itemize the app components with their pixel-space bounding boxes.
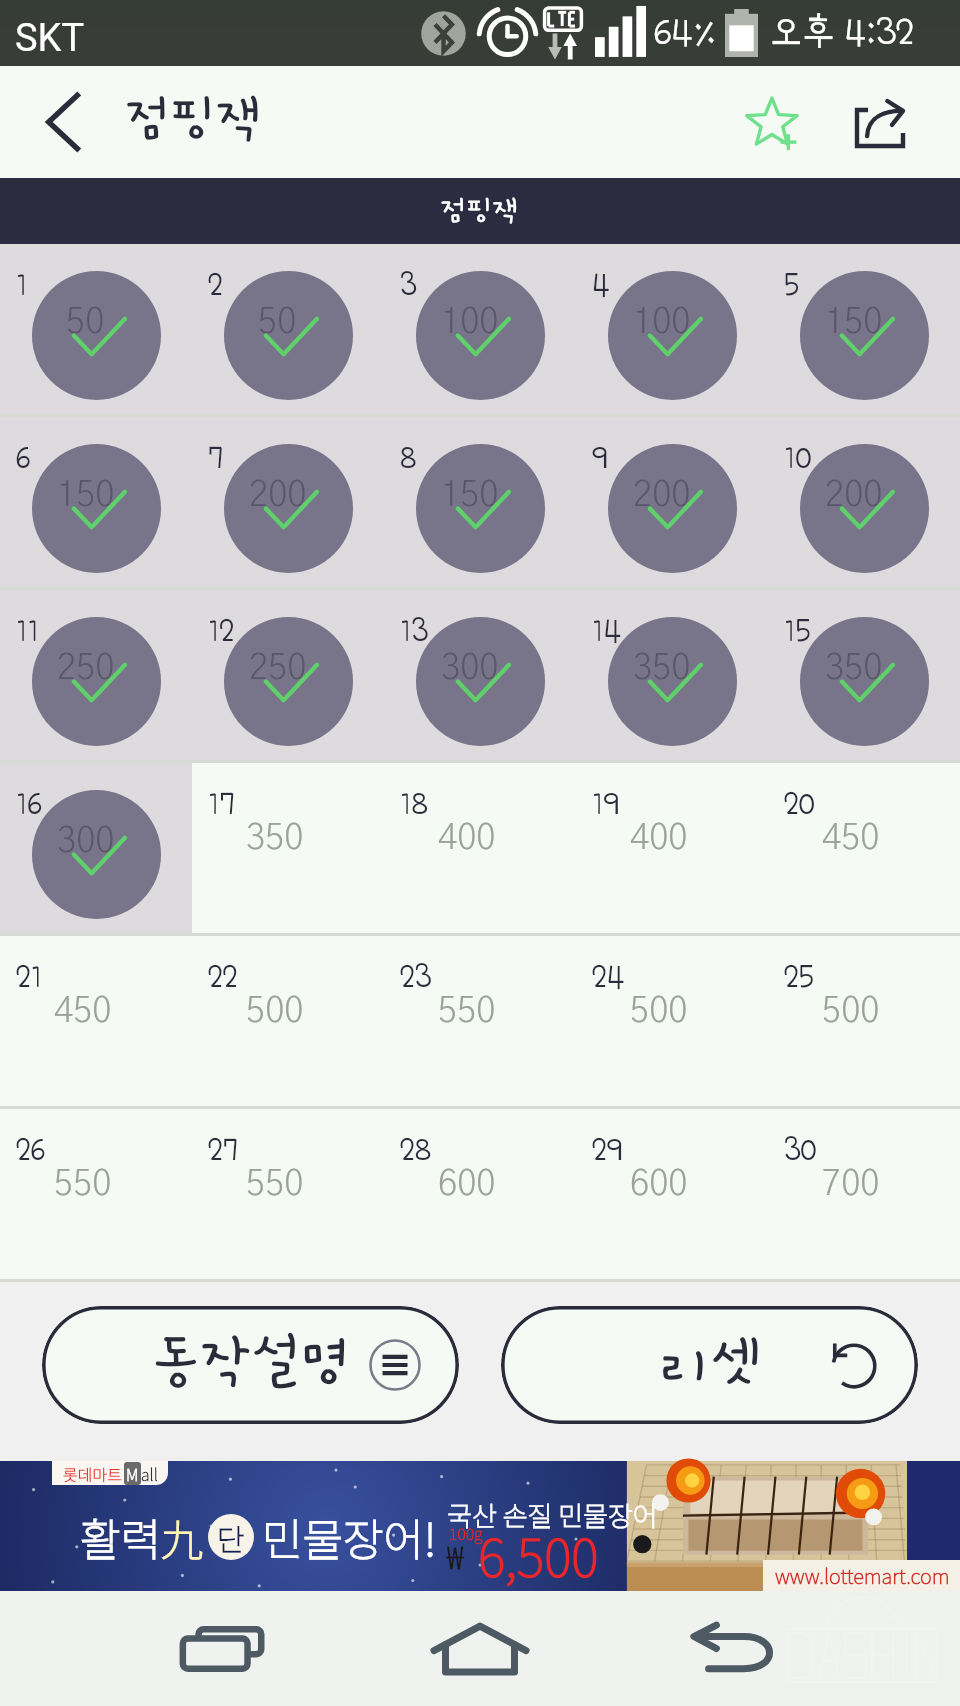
staticText: www.lottemart.com xyxy=(775,1561,950,1590)
button[interactable]: 8 xyxy=(384,417,576,587)
button[interactable]: 4 xyxy=(576,244,768,414)
button[interactable]: Add to favorites xyxy=(736,66,848,178)
staticText: 2 xyxy=(208,269,223,302)
staticText: 6 xyxy=(16,442,31,475)
button[interactable]: 24 xyxy=(576,936,768,1106)
staticText: M xyxy=(126,1462,139,1485)
staticText: 350 xyxy=(633,651,691,686)
button[interactable]: 5 xyxy=(768,244,960,414)
button[interactable]: 동작설명 xyxy=(42,1306,459,1424)
button[interactable]: 26 xyxy=(0,1109,192,1279)
staticText: 4 xyxy=(592,269,610,302)
staticText: 국산 손질 민물장어 xyxy=(447,1495,658,1534)
button[interactable]: 16 xyxy=(0,763,192,933)
button[interactable]: 30 xyxy=(768,1109,960,1279)
button[interactable]: 6 xyxy=(0,417,192,587)
button[interactable]: 18 xyxy=(384,763,576,933)
button[interactable]: 22 xyxy=(192,936,384,1106)
staticText: 700 xyxy=(822,1167,880,1202)
staticText: 8 xyxy=(400,442,417,475)
button[interactable]: 23 xyxy=(384,936,576,1106)
staticText: 단 xyxy=(217,1516,245,1559)
staticText: 오후 4:32 xyxy=(770,12,914,52)
staticText: 13 xyxy=(400,615,429,648)
staticText: 300 xyxy=(57,824,115,859)
staticText: 200 xyxy=(825,478,883,513)
staticText: 롯데마트 xyxy=(63,1462,122,1485)
button[interactable]: 20 xyxy=(768,763,960,933)
button[interactable]: 29 xyxy=(576,1109,768,1279)
staticText: 1 xyxy=(16,269,28,302)
button[interactable]: 15 xyxy=(768,590,960,760)
staticText: 450 xyxy=(822,821,880,856)
staticText: 550 xyxy=(246,1167,304,1202)
button[interactable]: 13 xyxy=(384,590,576,760)
staticText: 64% xyxy=(654,12,717,52)
staticText: 11 xyxy=(16,615,40,648)
staticText: 5 xyxy=(784,269,800,302)
button[interactable]: 12 xyxy=(192,590,384,760)
staticText: 400 xyxy=(438,821,496,856)
staticText: 12 xyxy=(208,615,235,648)
staticText: 활력 xyxy=(80,1505,161,1569)
staticText: 9 xyxy=(592,442,608,475)
staticText: 3 xyxy=(400,269,417,302)
staticText: 점핑잭 xyxy=(441,195,519,227)
staticText: 100 xyxy=(441,305,499,340)
button[interactable]: 28 xyxy=(384,1109,576,1279)
staticText: 150 xyxy=(825,305,883,340)
staticText: 350 xyxy=(825,651,883,686)
staticText: 九 xyxy=(161,1507,204,1568)
staticText: 300 xyxy=(441,651,499,686)
button[interactable]: 25 xyxy=(768,936,960,1106)
button[interactable]: 2 xyxy=(192,244,384,414)
staticText: 450 xyxy=(54,994,112,1029)
button[interactable]: 3 xyxy=(384,244,576,414)
button[interactable]: Back xyxy=(608,1591,864,1706)
staticText: 500 xyxy=(630,994,688,1029)
button[interactable]: 11 xyxy=(0,590,192,760)
button[interactable]: Recents xyxy=(96,1591,352,1706)
staticText: 14 xyxy=(592,615,621,648)
button[interactable]: Back xyxy=(0,66,126,178)
staticText: 민물장어! xyxy=(262,1505,437,1569)
staticText: 50 xyxy=(66,305,105,340)
staticText: 17 xyxy=(208,788,235,821)
button[interactable]: 14 xyxy=(576,590,768,760)
button[interactable]: 1 xyxy=(0,244,192,414)
staticText: 26 xyxy=(16,1134,45,1167)
staticText: 동작설명 xyxy=(151,1332,351,1394)
staticText: 10 xyxy=(784,442,812,475)
button[interactable]: 9 xyxy=(576,417,768,587)
staticText: 19 xyxy=(592,788,619,821)
staticText: 16 xyxy=(16,788,42,821)
staticText: 550 xyxy=(54,1167,112,1202)
staticText: 200 xyxy=(249,478,307,513)
staticText: 30 xyxy=(784,1134,817,1167)
staticText: 28 xyxy=(400,1134,432,1167)
staticText: 15 xyxy=(784,615,811,648)
staticText: 250 xyxy=(57,651,115,686)
staticText: 600 xyxy=(630,1167,688,1202)
button[interactable]: Home xyxy=(352,1591,608,1706)
staticText: 24 xyxy=(592,961,625,994)
staticText: 6,500 xyxy=(478,1517,599,1592)
staticText: 점핑잭 xyxy=(126,91,262,147)
button[interactable]: 21 xyxy=(0,936,192,1106)
button[interactable]: 10 xyxy=(768,417,960,587)
button[interactable]: 17 xyxy=(192,763,384,933)
staticText: 350 xyxy=(246,821,304,856)
button[interactable]: 7 xyxy=(192,417,384,587)
staticText: 600 xyxy=(438,1167,496,1202)
button[interactable]: Share xyxy=(848,66,960,178)
button[interactable]: Advertisement: Lotte Mart Mall xyxy=(0,1461,960,1591)
staticText: 29 xyxy=(592,1134,622,1167)
staticText: 500 xyxy=(822,994,880,1029)
staticText: 21 xyxy=(16,961,43,994)
staticText: all xyxy=(141,1462,158,1485)
button[interactable]: 리셋 xyxy=(501,1306,918,1424)
button[interactable]: 27 xyxy=(192,1109,384,1279)
button[interactable]: 19 xyxy=(576,763,768,933)
staticText: 400 xyxy=(630,821,688,856)
staticText: 18 xyxy=(400,788,428,821)
